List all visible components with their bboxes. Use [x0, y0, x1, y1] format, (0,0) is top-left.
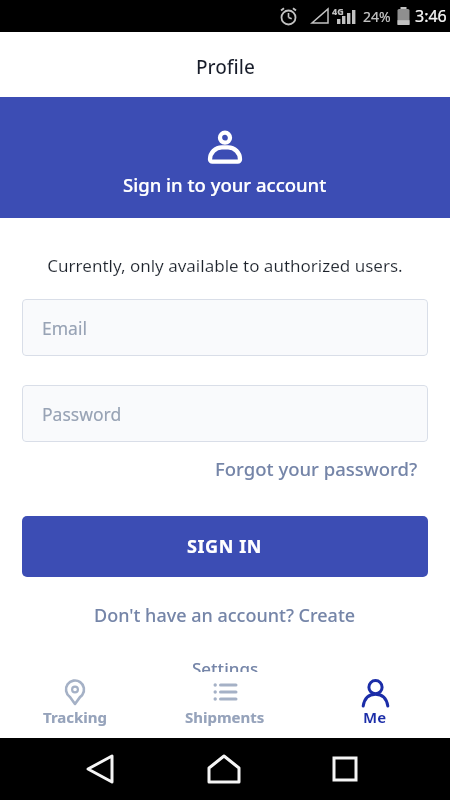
button[interactable]: Tracking [0, 672, 150, 738]
staticText: Sign in to your account [123, 172, 327, 197]
button[interactable]: Don't have an account? Create [94, 603, 356, 628]
button[interactable]: Email [22, 299, 428, 356]
staticText: Don't have an account? Create [94, 603, 356, 628]
staticText: 24% [363, 7, 391, 26]
staticText: Currently, only available to authorized … [22, 254, 428, 277]
staticText: Shipments [185, 707, 265, 727]
staticText: Profile [196, 54, 255, 80]
staticText: 3:46 [415, 5, 447, 27]
button[interactable]: Shipments [150, 672, 300, 738]
staticText: Email [42, 316, 87, 340]
button[interactable]: SIGN IN [22, 516, 428, 577]
staticText: Forgot your password? [215, 456, 418, 481]
staticText: 4G [332, 5, 344, 17]
button[interactable]: Password [22, 385, 428, 442]
button[interactable]: Me [300, 672, 450, 738]
staticText: Tracking [43, 707, 108, 727]
staticText: Settings [192, 657, 259, 672]
staticText: SIGN IN [187, 534, 263, 559]
staticText: Me [363, 707, 387, 727]
button[interactable]: Settings [192, 657, 259, 672]
button[interactable]: Forgot your password? [215, 456, 428, 481]
staticText: Password [42, 402, 122, 426]
